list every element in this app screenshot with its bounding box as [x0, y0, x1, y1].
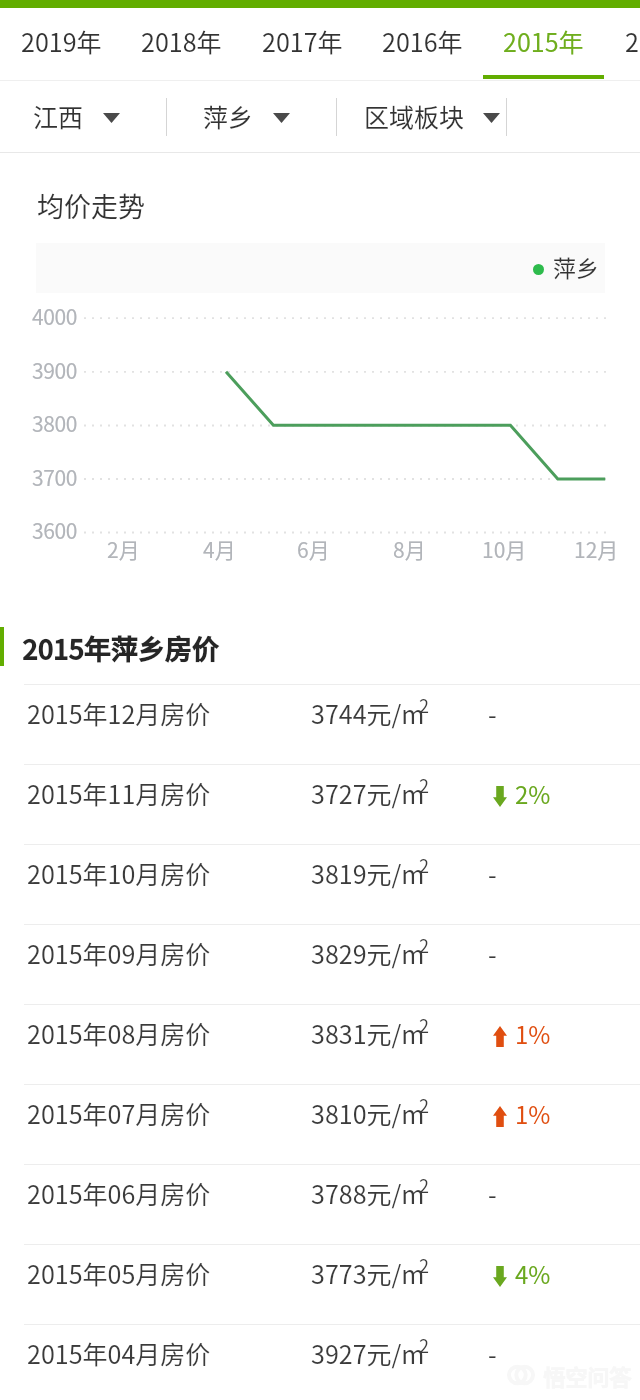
staticText: 4月: [203, 534, 236, 564]
button[interactable]: [342, 82, 518, 152]
button[interactable]: 2018年: [122, 8, 240, 78]
button[interactable]: [0, 1084, 640, 1164]
staticText: 12月: [574, 534, 619, 564]
staticText: 2015年05月房价: [27, 1255, 211, 1291]
button[interactable]: [181, 82, 348, 152]
button[interactable]: [0, 1164, 640, 1244]
button[interactable]: [0, 684, 640, 764]
staticText: 2: [419, 852, 429, 878]
staticText: 2%: [515, 776, 551, 811]
staticText: 萍乡: [203, 98, 254, 134]
staticText: 3927元/m: [311, 1335, 425, 1371]
button[interactable]: [0, 1324, 640, 1400]
button[interactable]: [0, 1004, 640, 1084]
button[interactable]: 2016年: [363, 8, 481, 78]
staticText: 1%: [515, 1096, 551, 1131]
staticText: 8月: [393, 534, 426, 564]
staticText: 2: [625, 23, 639, 59]
staticText: 6月: [297, 534, 330, 564]
button[interactable]: 2: [618, 8, 640, 78]
staticText: 3829元/m: [311, 935, 425, 971]
staticText: -: [488, 935, 497, 971]
staticText: 10月: [482, 534, 527, 564]
staticText: 2: [419, 1172, 429, 1198]
other: Price down: [493, 786, 507, 807]
staticText: 3744元/m: [311, 695, 425, 731]
other: Open 萍乡 selector: [273, 113, 290, 123]
button[interactable]: 2017年: [243, 8, 361, 78]
other: Price up: [493, 1026, 507, 1047]
staticText: 2015年12月房价: [27, 695, 211, 731]
staticText: 2015年07月房价: [27, 1095, 211, 1131]
staticText: 萍乡: [553, 250, 599, 283]
staticText: 3788元/m: [311, 1175, 425, 1211]
staticText: 2: [419, 772, 429, 798]
staticText: 3700: [32, 462, 78, 492]
staticText: 2: [419, 1252, 429, 1278]
button[interactable]: [0, 844, 640, 924]
other: Open 区域板块 selector: [483, 113, 500, 123]
staticText: 均价走势: [37, 186, 145, 225]
staticText: -: [488, 855, 497, 891]
button[interactable]: [0, 764, 640, 844]
staticText: 悟空问答: [543, 1360, 632, 1392]
staticText: 2015年09月房价: [27, 935, 211, 971]
staticText: 2015年11月房价: [27, 775, 211, 811]
staticText: 2019年: [21, 23, 102, 59]
staticText: 3810元/m: [311, 1095, 425, 1131]
button[interactable]: [0, 1244, 640, 1324]
button[interactable]: [0, 924, 640, 1004]
button[interactable]: [11, 82, 178, 152]
other: Open 江西 selector: [103, 113, 120, 123]
staticText: 2: [419, 692, 429, 718]
button[interactable]: 2015年: [484, 8, 602, 78]
staticText: 2: [419, 1332, 429, 1358]
staticText: 2015年10月房价: [27, 855, 211, 891]
staticText: 区域板块: [364, 98, 465, 134]
staticText: 2: [419, 1092, 429, 1118]
button[interactable]: 2019年: [2, 8, 120, 78]
staticText: 3773元/m: [311, 1255, 425, 1291]
staticText: -: [488, 1335, 497, 1371]
staticText: 3800: [32, 408, 78, 438]
staticText: 3727元/m: [311, 775, 425, 811]
staticText: 2018年: [141, 23, 222, 59]
staticText: -: [488, 1175, 497, 1211]
staticText: 3900: [32, 355, 78, 385]
other: Price up: [493, 1106, 507, 1127]
staticText: 2月: [107, 534, 140, 564]
staticText: 2: [419, 932, 429, 958]
staticText: 4000: [32, 301, 78, 331]
staticText: 2017年: [262, 23, 343, 59]
staticText: 2015年06月房价: [27, 1175, 211, 1211]
staticText: 2016年: [382, 23, 463, 59]
staticText: 2015年08月房价: [27, 1015, 211, 1051]
staticText: 2015年: [503, 23, 584, 59]
staticText: -: [488, 695, 497, 731]
staticText: 2015年04月房价: [27, 1335, 211, 1371]
staticText: 4%: [515, 1256, 551, 1291]
staticText: 2: [419, 1012, 429, 1038]
staticText: 江西: [33, 98, 84, 134]
staticText: 2015年萍乡房价: [22, 629, 219, 668]
other: Price down: [493, 1266, 507, 1287]
staticText: 3819元/m: [311, 855, 425, 891]
staticText: 3600: [32, 515, 78, 545]
staticText: 1%: [515, 1016, 551, 1051]
staticText: 3831元/m: [311, 1015, 425, 1051]
